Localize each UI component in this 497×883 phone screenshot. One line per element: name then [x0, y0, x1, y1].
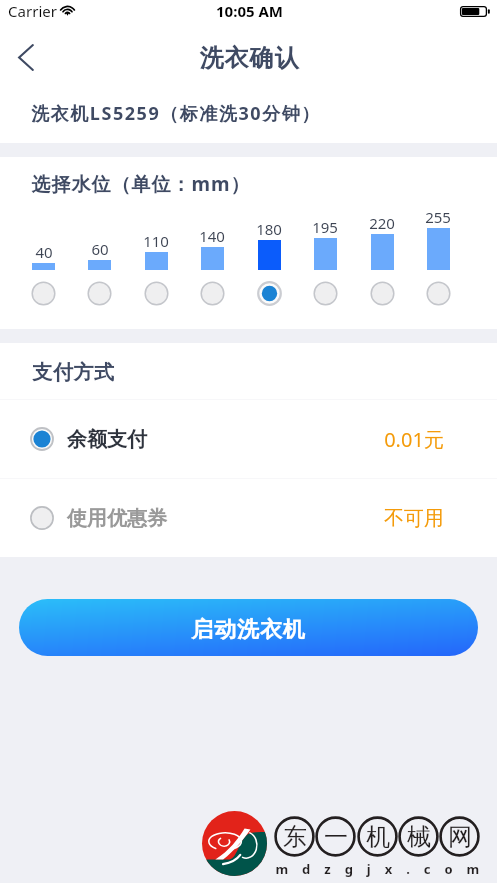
staticText: 启动洗衣机 [191, 616, 306, 644]
staticText: 40 [35, 242, 53, 262]
staticText: 220 [369, 213, 395, 233]
button[interactable]: 255 [415, 205, 461, 306]
staticText: 10:05 AM [216, 1, 283, 21]
button[interactable]: 40 [20, 205, 66, 306]
staticText: 110 [143, 231, 169, 251]
staticText: 180 [256, 219, 282, 239]
staticText: 不可用 [384, 506, 444, 531]
staticText: 195 [312, 217, 338, 237]
staticText: 一 [324, 822, 348, 852]
button[interactable]: 使用优惠券 [0, 479, 497, 557]
staticText: 余额支付 [67, 427, 147, 452]
staticText: 网 [448, 822, 472, 852]
button[interactable]: 195 [302, 205, 348, 306]
staticText: 东 [283, 822, 307, 852]
button[interactable]: Back [0, 28, 54, 83]
staticText: 械 [407, 822, 431, 852]
staticText: 机 [366, 822, 390, 852]
button[interactable]: 余额支付 [0, 400, 497, 478]
button[interactable]: 110 [133, 205, 179, 306]
button[interactable]: 180 [246, 205, 292, 306]
staticText: 140 [199, 226, 225, 246]
staticText: 0.01元 [384, 426, 444, 453]
button[interactable]: 220 [359, 205, 405, 306]
staticText: 洗衣确认 [199, 43, 299, 73]
staticText: Carrier [8, 1, 57, 21]
button[interactable]: 60 [76, 205, 122, 306]
staticText: 支付方式 [32, 360, 115, 385]
staticText: 洗衣机LS5259（标准洗30分钟） [31, 101, 321, 126]
staticText: 选择水位（单位：mm） [31, 171, 251, 197]
staticText: m d z g j x . c o m [275, 860, 485, 878]
staticText: 使用优惠券 [67, 506, 167, 531]
staticText: 60 [91, 239, 109, 259]
button[interactable]: 启动洗衣机 [19, 599, 478, 656]
staticText: 255 [425, 207, 451, 227]
button[interactable]: 140 [189, 205, 235, 306]
